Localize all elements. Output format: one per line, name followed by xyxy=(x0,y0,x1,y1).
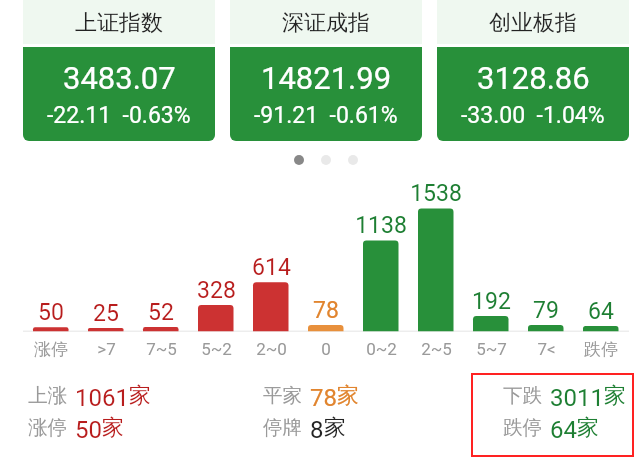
staticText: 78 xyxy=(310,384,337,412)
staticText: 192 xyxy=(472,288,511,315)
button[interactable]: 上证指数 xyxy=(23,0,215,141)
staticText: 家 xyxy=(129,382,151,410)
staticText: 0~2 xyxy=(366,339,397,359)
staticText: 79 xyxy=(533,297,559,324)
staticText: 3483.07 xyxy=(63,60,176,96)
staticText: 7~5 xyxy=(146,339,177,359)
staticText: 14821.99 xyxy=(261,60,392,96)
staticText: 64 xyxy=(588,298,614,325)
staticText: 3128.86 xyxy=(477,60,590,96)
staticText: 平家 xyxy=(263,383,302,408)
staticText: 跌停 xyxy=(503,415,542,440)
staticText: -33.00 -1.04% xyxy=(461,102,605,129)
staticText: 7< xyxy=(537,339,556,359)
staticText: 家 xyxy=(577,414,599,442)
staticText: 涨停 xyxy=(28,415,67,440)
staticText: 家 xyxy=(604,382,626,410)
staticText: 深证成指 xyxy=(282,9,370,37)
staticText: 78 xyxy=(313,297,339,324)
staticText: -91.21 -0.61% xyxy=(254,102,398,129)
button[interactable]: 停牌 xyxy=(263,412,346,440)
staticText: 上涨 xyxy=(28,383,67,408)
staticText: 上证指数 xyxy=(75,9,163,37)
button[interactable]: 涨停 xyxy=(28,412,124,440)
staticText: 跌停 xyxy=(584,339,618,360)
staticText: 614 xyxy=(252,254,291,281)
staticText: 328 xyxy=(197,277,236,304)
button[interactable]: Page 1 xyxy=(294,155,304,165)
button[interactable]: 下跌 xyxy=(503,380,626,408)
staticText: 25 xyxy=(93,300,119,327)
button[interactable]: 创业板指 xyxy=(437,0,629,141)
button[interactable]: 7~5 52 xyxy=(133,297,188,357)
staticText: 0 xyxy=(321,339,331,359)
button[interactable]: 深证成指 xyxy=(230,0,422,141)
staticText: 5~7 xyxy=(476,339,507,359)
staticText: 家 xyxy=(324,414,346,442)
staticText: 下跌 xyxy=(503,383,542,408)
staticText: 1061 xyxy=(75,384,129,412)
staticText: 1538 xyxy=(410,180,462,207)
staticText: 64 xyxy=(550,416,577,444)
staticText: 创业板指 xyxy=(489,9,577,37)
staticText: 8 xyxy=(310,416,324,444)
button[interactable]: 2~5 1538 xyxy=(408,178,463,357)
staticText: >7 xyxy=(97,339,116,359)
staticText: 50 xyxy=(75,416,102,444)
button[interactable]: >7 25 xyxy=(78,298,133,357)
button[interactable]: 0 78 xyxy=(298,295,353,357)
staticText: 涨停 xyxy=(34,339,68,360)
staticText: 52 xyxy=(148,299,174,326)
button[interactable]: 跌停 64 xyxy=(573,296,628,357)
button[interactable]: Page 2 xyxy=(321,155,331,165)
button[interactable]: Page 3 xyxy=(348,155,358,165)
button[interactable]: 上涨 xyxy=(28,380,151,408)
staticText: 家 xyxy=(102,414,124,442)
staticText: -22.11 -0.63% xyxy=(47,102,191,129)
button[interactable]: 涨停 50 xyxy=(23,297,78,357)
button[interactable]: 平家 xyxy=(263,380,359,408)
staticText: 2~5 xyxy=(421,339,452,359)
staticText: 家 xyxy=(337,382,359,410)
staticText: 5~2 xyxy=(201,339,232,359)
button[interactable]: 2~0 614 xyxy=(243,252,298,357)
button[interactable]: 5~2 328 xyxy=(188,275,243,357)
staticText: 50 xyxy=(38,299,64,326)
button[interactable]: 7< 79 xyxy=(518,295,573,357)
button[interactable]: 跌停 xyxy=(503,412,599,440)
staticText: 1138 xyxy=(355,212,407,239)
staticText: 3011 xyxy=(550,384,604,412)
staticText: 2~0 xyxy=(256,339,287,359)
staticText: 停牌 xyxy=(263,415,302,440)
button[interactable]: 0~2 1138 xyxy=(353,210,408,357)
button[interactable]: 5~7 192 xyxy=(463,286,518,357)
